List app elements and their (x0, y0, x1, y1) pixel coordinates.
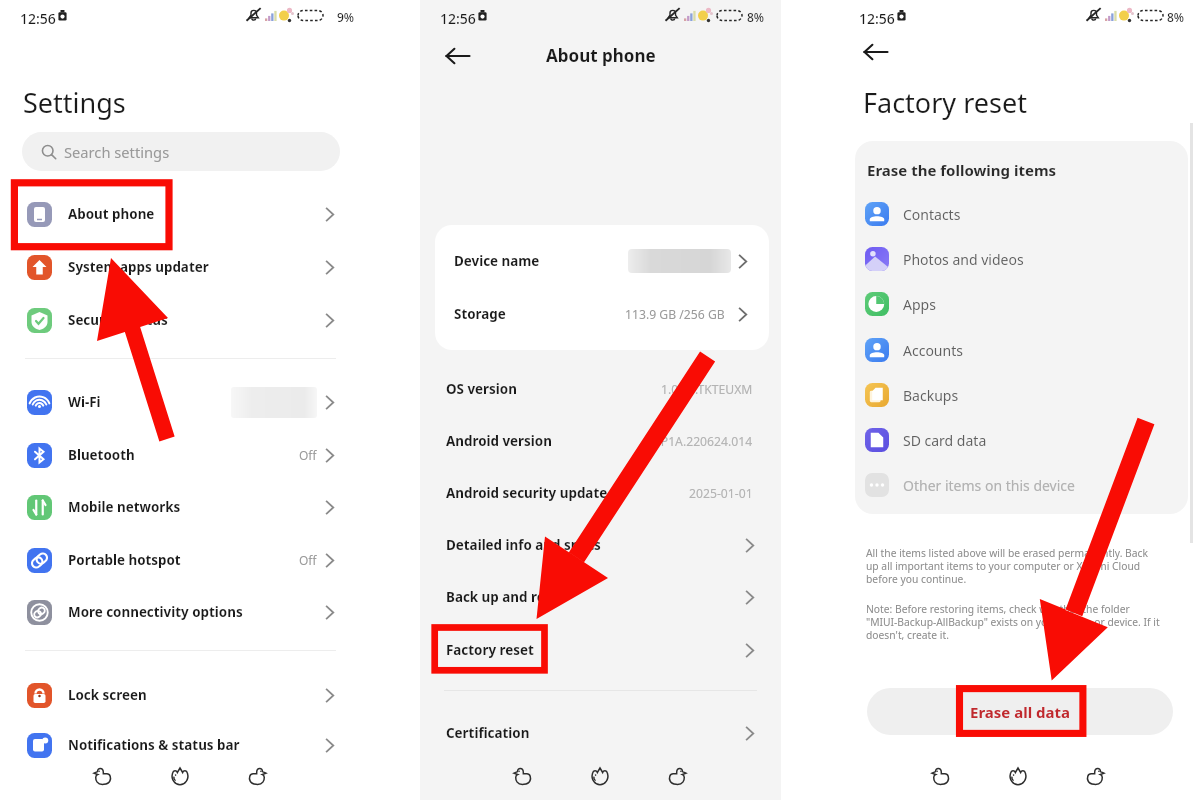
staticText: Off (299, 552, 317, 568)
staticText: Apps (903, 295, 936, 314)
button[interactable]: Device name (435, 237, 769, 285)
staticText: About phone (546, 44, 656, 67)
button[interactable]: Back up and reset (428, 575, 773, 619)
staticText: SD card data (903, 431, 987, 450)
staticText: Android version (446, 432, 552, 450)
button[interactable]: Detailed info and specs (428, 523, 773, 567)
staticText: 12:56 (859, 9, 895, 28)
button[interactable]: Recent apps (511, 765, 533, 787)
staticText: OS version (446, 380, 517, 398)
staticText: Device name (454, 252, 540, 270)
staticText: Factory reset (863, 84, 1027, 121)
button[interactable]: Erase all data (867, 688, 1173, 735)
staticText: Settings (23, 84, 126, 121)
button[interactable]: Bluetooth (6, 433, 354, 477)
button[interactable]: Factory reset (428, 628, 773, 672)
staticText: Back up and reset (446, 588, 566, 606)
staticText: 113.9 GB /256 GB (625, 306, 725, 323)
button[interactable]: Other items on this device (855, 468, 1175, 502)
staticText: Backups (903, 386, 959, 405)
staticText: Android security update (446, 484, 608, 502)
staticText: Factory reset (446, 641, 534, 659)
button[interactable]: Search settings (22, 132, 340, 171)
button[interactable]: Photos and videos (855, 242, 1175, 276)
staticText: 1.0.1...TKTEUXM (661, 381, 753, 398)
button[interactable]: SD card data (855, 423, 1175, 457)
staticText: Off (299, 447, 317, 463)
staticText: About phone (68, 205, 155, 223)
button[interactable]: Accounts (855, 333, 1175, 367)
staticText: Wi-Fi (68, 393, 101, 411)
staticText: Security status (68, 311, 168, 329)
button[interactable]: Back (1085, 765, 1107, 787)
staticText: Contacts (903, 205, 961, 224)
button[interactable]: Home (169, 765, 191, 787)
button[interactable]: Recent apps (929, 765, 951, 787)
staticText: System apps updater (68, 258, 209, 276)
staticText: Mobile networks (68, 498, 181, 516)
staticText: 2025-01-01 (689, 485, 753, 502)
staticText: Photos and videos (903, 250, 1024, 269)
button[interactable]: Portable hotspot (6, 538, 354, 582)
button[interactable]: Wi-Fi (6, 380, 354, 424)
button[interactable]: More connectivity options (6, 590, 354, 634)
button[interactable]: Mobile networks (6, 485, 354, 529)
staticText: 12:56 (440, 9, 476, 28)
staticText: 9% (337, 9, 355, 25)
staticText: 12:56 (20, 9, 56, 28)
staticText: Lock screen (68, 686, 147, 704)
staticText: Accounts (903, 341, 963, 360)
staticText: 1...P1A.220624.014 (644, 433, 753, 450)
staticText: Erase all data (970, 702, 1070, 722)
button[interactable]: Contacts (855, 197, 1175, 231)
button[interactable]: Back (440, 38, 476, 74)
button[interactable]: Recent apps (91, 765, 113, 787)
staticText: Erase the following items (867, 160, 1057, 180)
button[interactable]: Lock screen (6, 673, 354, 717)
staticText: More connectivity options (68, 603, 243, 621)
staticText: All the items listed above will be erase… (866, 546, 1149, 586)
staticText: Storage (454, 305, 506, 323)
button[interactable]: OS version (428, 367, 773, 411)
button[interactable]: Notifications & status bar (6, 723, 354, 767)
button[interactable]: Backups (855, 378, 1175, 412)
button[interactable]: Android version (428, 419, 773, 463)
staticText: Certification (446, 724, 530, 742)
staticText: Bluetooth (68, 446, 135, 464)
staticText: 8% (747, 9, 765, 25)
button[interactable]: Back (667, 765, 689, 787)
button[interactable]: About phone (6, 192, 354, 236)
staticText: Detailed info and specs (446, 536, 601, 554)
button[interactable]: Security status (6, 298, 354, 342)
staticText: Search settings (64, 142, 170, 162)
button[interactable]: Home (589, 765, 611, 787)
staticText: Note: Before restoring items, check whet… (866, 602, 1160, 642)
button[interactable]: Back (858, 34, 894, 70)
button[interactable]: Home (1007, 765, 1029, 787)
staticText: Other items on this device (903, 476, 1075, 495)
button[interactable]: Android security update (428, 471, 773, 515)
staticText: Portable hotspot (68, 551, 181, 569)
button[interactable]: System apps updater (6, 245, 354, 289)
button[interactable]: Storage (435, 290, 769, 338)
button[interactable]: Back (247, 765, 269, 787)
staticText: Notifications & status bar (68, 736, 240, 754)
button[interactable]: Apps (855, 287, 1175, 321)
staticText: 8% (1167, 9, 1185, 25)
button[interactable]: Certification (428, 711, 773, 755)
